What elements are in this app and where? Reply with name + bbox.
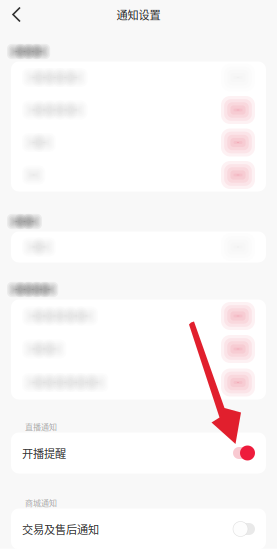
staticText: 商城通知 [25,497,57,508]
staticText: 直播通知 [25,421,57,432]
button[interactable]: Back [0,0,34,29]
staticText: 开播提醒 [22,445,66,461]
button[interactable]: 开播提醒 [11,432,266,473]
staticText: 通知设置 [116,6,160,23]
button[interactable]: 交易及售后通知 [11,508,266,549]
staticText: 交易及售后通知 [22,521,99,537]
